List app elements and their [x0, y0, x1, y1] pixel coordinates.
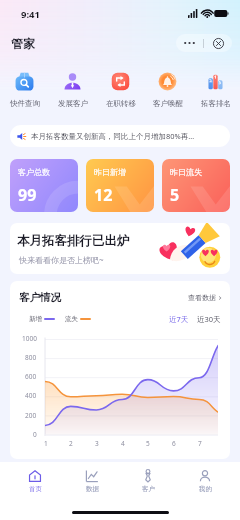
- button[interactable]: 本月拓客数量又创新高，同比上个月增加80%再…: [10, 125, 230, 147]
- staticText: 客户: [142, 485, 155, 493]
- staticText: 4: [121, 439, 125, 448]
- staticText: 1000: [22, 334, 37, 343]
- staticText: 客户唤醒: [153, 99, 183, 108]
- staticText: 0: [33, 430, 37, 439]
- button[interactable]: 客户唤醒: [145, 72, 190, 108]
- staticText: 近7天: [169, 314, 189, 324]
- staticText: 7: [198, 439, 202, 448]
- button[interactable]: 首页: [14, 469, 56, 493]
- staticText: 600: [25, 372, 37, 381]
- button[interactable]: Close: [204, 34, 232, 52]
- staticText: 查看数据: [188, 293, 216, 302]
- staticText: 管家: [11, 36, 35, 51]
- staticText: 数据: [86, 485, 99, 493]
- button[interactable]: 拓客排名: [193, 72, 238, 108]
- staticText: 800: [25, 353, 37, 362]
- button[interactable]: 本月拓客排行已出炉: [10, 223, 230, 274]
- staticText: 近30天: [197, 314, 221, 324]
- button[interactable]: 客户: [127, 469, 169, 493]
- button[interactable]: 昨日新增: [86, 159, 154, 212]
- button[interactable]: 数据: [71, 469, 113, 493]
- staticText: 拓客排名: [201, 99, 231, 108]
- button[interactable]: 快件查询: [2, 72, 47, 108]
- staticText: 在职转移: [106, 99, 136, 108]
- staticText: 客户总数: [18, 167, 50, 177]
- button[interactable]: 查看数据: [188, 293, 222, 302]
- staticText: 我的: [199, 485, 212, 493]
- staticText: 9:41: [21, 8, 40, 21]
- staticText: 昨日新增: [94, 167, 126, 177]
- staticText: 新增: [29, 315, 42, 323]
- staticText: 2: [69, 439, 73, 448]
- button[interactable]: More options: [176, 34, 232, 52]
- staticText: 客户情况: [19, 291, 61, 304]
- staticText: 本月拓客排行已出炉: [17, 233, 130, 249]
- button[interactable]: 近30天: [197, 314, 221, 324]
- button[interactable]: 在职转移: [98, 72, 143, 108]
- staticText: 本月拓客数量又创新高，同比上个月增加80%再…: [31, 131, 195, 141]
- staticText: 快件查询: [10, 99, 40, 108]
- staticText: 400: [25, 391, 37, 400]
- staticText: 6: [172, 439, 176, 448]
- staticText: 99: [18, 184, 37, 206]
- button[interactable]: 发展客户: [50, 72, 95, 108]
- staticText: 5: [146, 439, 150, 448]
- button[interactable]: 客户总数: [10, 159, 78, 212]
- staticText: 快来看看你是否上榜吧~: [19, 254, 104, 265]
- staticText: 发展客户: [58, 99, 88, 108]
- staticText: 1: [44, 439, 48, 448]
- staticText: 12: [94, 184, 113, 206]
- button[interactable]: 近7天: [169, 314, 189, 324]
- staticText: 昨日流失: [170, 167, 202, 177]
- staticText: 3: [95, 439, 99, 448]
- staticText: 200: [25, 411, 37, 420]
- button[interactable]: More options: [176, 34, 203, 52]
- button[interactable]: 昨日流失: [162, 159, 230, 212]
- staticText: 首页: [29, 485, 42, 493]
- staticText: 流失: [65, 315, 78, 323]
- staticText: 5: [170, 184, 180, 206]
- button[interactable]: 我的: [184, 469, 226, 493]
